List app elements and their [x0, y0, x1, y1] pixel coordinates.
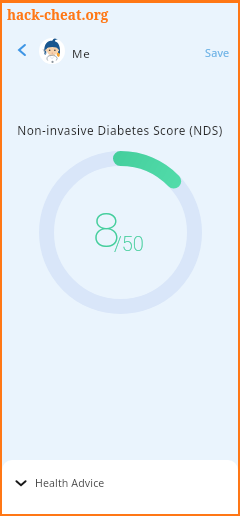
staticText: Save	[205, 45, 230, 60]
button[interactable]: Health Advice	[2, 460, 238, 514]
staticText: Me	[72, 46, 91, 62]
staticText: hack-cheat.org	[7, 6, 109, 24]
staticText: Health Advice	[35, 476, 105, 490]
staticText: Non-invasive Diabetes Score (NDS)	[2, 122, 238, 138]
button[interactable]: Back	[7, 35, 37, 65]
staticText: 8	[93, 202, 120, 259]
button[interactable]: Save	[193, 39, 240, 66]
staticText: /50	[114, 232, 144, 255]
